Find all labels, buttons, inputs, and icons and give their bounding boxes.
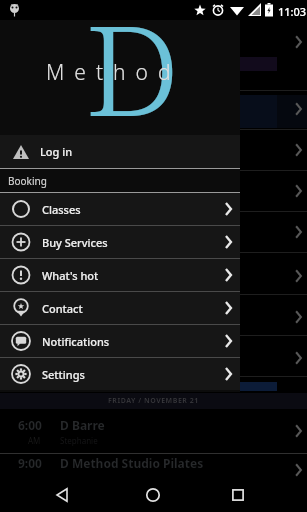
staticText: Settings [42,367,85,382]
staticText: 11:03 [278,4,307,19]
staticText: Notifications [42,334,110,349]
staticText: What's hot [42,268,99,283]
button[interactable]: Classes [0,193,240,225]
button[interactable]: Buy Services [0,226,240,258]
staticText: Buy Services [42,235,108,250]
staticText: Booking [8,174,47,188]
staticText: 6:00 [18,417,42,433]
button[interactable]: Contact [0,292,240,324]
button[interactable] [224,481,252,509]
staticText: Classes [42,202,81,217]
button[interactable] [139,481,167,509]
staticText: AM [28,435,41,446]
staticText: Log in [40,144,73,159]
button[interactable]: Log in [0,135,240,168]
button[interactable] [48,481,76,509]
staticText: Method [46,58,181,87]
button[interactable]: Settings [0,358,240,390]
staticText: FRIDAY / NOVEMBER 21 [108,396,199,406]
staticText: D Barre [60,417,105,433]
staticText: D Method Studio Pilates [60,455,204,471]
staticText: Contact [42,301,83,316]
staticText: 9:00 [18,455,42,471]
button[interactable]: What's hot [0,259,240,291]
staticText: D [85,0,181,152]
staticText: Stephanie [60,435,98,446]
button[interactable]: Notifications [0,325,240,357]
